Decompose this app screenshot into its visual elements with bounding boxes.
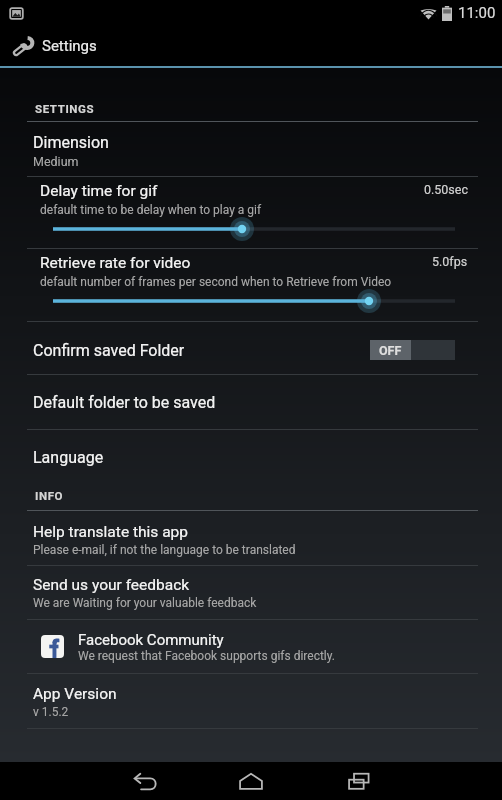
button[interactable]: Default folder to be saved xyxy=(0,376,502,429)
staticText: Please e-mail, if not the language to be… xyxy=(33,543,296,557)
staticText: Language xyxy=(33,448,104,467)
staticText: INFO xyxy=(35,489,64,502)
staticText: App Version xyxy=(33,685,117,703)
staticText: v 1.5.2 xyxy=(33,705,69,719)
button[interactable]: Confirm saved Folder xyxy=(0,324,502,376)
staticText: Dimension xyxy=(33,133,109,152)
staticText: Facebook Community xyxy=(78,631,224,649)
staticText: Confirm saved Folder xyxy=(33,341,370,360)
staticText: Send us your feedback xyxy=(33,576,190,594)
staticText: We are Waiting for your valuable feedbac… xyxy=(33,596,257,610)
button[interactable]: Delay time for gif xyxy=(0,179,502,248)
staticText: 0.50sec xyxy=(424,182,468,197)
staticText: 5.0fps xyxy=(432,254,468,269)
button[interactable]: Dimension xyxy=(0,124,502,176)
button[interactable]: Home xyxy=(211,762,291,800)
button[interactable]: Recents xyxy=(320,762,400,800)
staticText: Settings xyxy=(42,37,97,55)
button[interactable]: Help translate this app xyxy=(0,513,502,565)
staticText: default time to be delay when to play a … xyxy=(40,203,262,217)
button[interactable]: Language xyxy=(0,431,502,484)
button[interactable]: Back xyxy=(105,762,185,800)
staticText: Retrieve rate for video xyxy=(40,254,191,272)
button[interactable]: Send us your feedback xyxy=(0,566,502,619)
staticText: OFF xyxy=(379,343,402,358)
staticText: Help translate this app xyxy=(33,523,188,541)
staticText: Medium xyxy=(33,154,79,169)
staticText: We request that Facebook supports gifs d… xyxy=(78,649,335,663)
button[interactable]: Facebook Community xyxy=(0,620,502,673)
staticText: Default folder to be saved xyxy=(33,393,216,412)
staticText: SETTINGS xyxy=(35,102,95,115)
button[interactable]: App Version xyxy=(0,675,502,728)
staticText: 11:00 xyxy=(458,4,496,22)
button[interactable]: Retrieve rate for video xyxy=(0,251,502,320)
staticText: default number of frames per second when… xyxy=(40,275,392,289)
staticText: Delay time for gif xyxy=(40,182,158,200)
